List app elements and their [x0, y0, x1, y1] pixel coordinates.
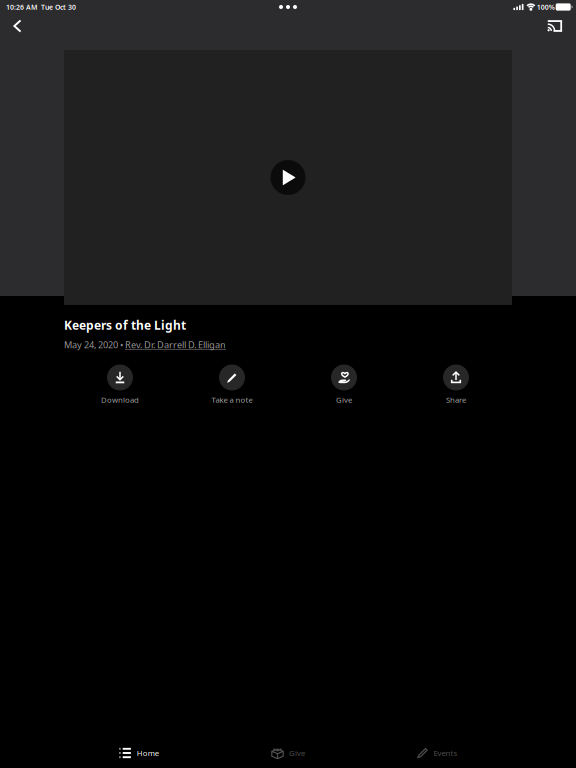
staticText: Home	[137, 748, 159, 758]
staticText: Download	[101, 394, 139, 405]
staticText: Give	[336, 394, 352, 405]
button[interactable]: Home	[64, 736, 213, 768]
staticText: Give	[289, 748, 305, 758]
button[interactable]: Play	[270, 160, 305, 195]
button[interactable]: Back	[0, 13, 34, 39]
button[interactable]: Share	[400, 364, 512, 404]
staticText: Events	[433, 748, 457, 758]
button[interactable]: Events	[363, 736, 512, 768]
staticText: Share	[446, 394, 466, 405]
staticText: Keepers of the Light	[64, 317, 186, 333]
button[interactable]: Cast to TV	[537, 13, 571, 39]
button[interactable]: Give	[213, 736, 363, 768]
button[interactable]: Take a note	[176, 364, 288, 404]
staticText: 100%	[537, 2, 555, 12]
button[interactable]: Download	[64, 364, 176, 404]
button[interactable]: Give	[288, 364, 400, 404]
staticText: Take a note	[211, 394, 252, 405]
staticText: 10:26 AM	[6, 2, 37, 12]
staticText: Rev. Dr. Darrell D. Elligan	[125, 338, 226, 351]
staticText: Tue Oct 30	[41, 2, 76, 12]
staticText: May 24, 2020 •	[64, 338, 125, 351]
button[interactable]: Rev. Dr. Darrell D. Elligan	[125, 338, 226, 351]
